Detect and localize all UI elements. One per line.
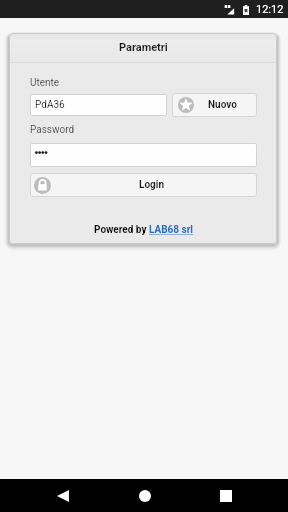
button[interactable]: LAB68 srl (149, 224, 194, 236)
staticText: PdA36 (35, 99, 65, 111)
staticText: Parametri (119, 41, 168, 54)
button[interactable]: Back (41, 479, 85, 512)
button[interactable]: Nuovo (172, 93, 257, 117)
staticText: 12:12 (256, 3, 284, 16)
staticText: Nuovo (208, 99, 237, 111)
staticText: Login (139, 179, 165, 191)
staticText: Password (30, 124, 75, 136)
button[interactable]: Recent apps (204, 479, 248, 512)
button[interactable]: Login (30, 173, 257, 197)
staticText: Powered by (94, 224, 149, 236)
staticText: Utente (30, 77, 60, 89)
button[interactable] (30, 143, 257, 167)
button[interactable]: PdA36 (30, 94, 167, 116)
button[interactable]: Home (123, 479, 167, 512)
